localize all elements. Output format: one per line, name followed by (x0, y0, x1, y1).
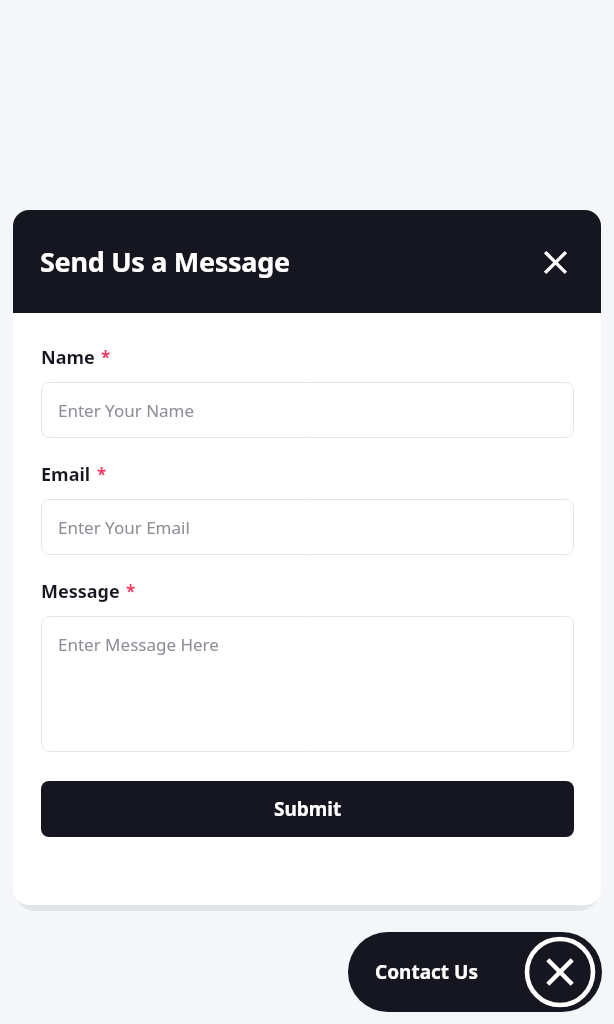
staticText: Email (41, 462, 91, 487)
button[interactable]: Enter Your Email (41, 499, 574, 555)
button[interactable]: Enter Your Name (41, 382, 574, 438)
button[interactable]: Submit (41, 781, 574, 837)
staticText: Enter Your Name (58, 399, 195, 422)
staticText: * (97, 463, 107, 486)
staticText: Send Us a Message (40, 243, 290, 280)
staticText: Contact Us (375, 959, 478, 985)
staticText: * (126, 580, 136, 603)
button[interactable]: Close (533, 240, 577, 284)
staticText: Submit (274, 796, 342, 822)
button[interactable]: Enter Message Here (41, 616, 574, 752)
staticText: Name (41, 345, 95, 370)
staticText: * (101, 346, 111, 369)
button[interactable]: Contact Us (348, 932, 602, 1012)
staticText: Enter Your Email (58, 516, 190, 539)
staticText: Message (41, 579, 120, 604)
staticText: Enter Message Here (58, 633, 219, 656)
other: Close contact form (522, 934, 598, 1010)
